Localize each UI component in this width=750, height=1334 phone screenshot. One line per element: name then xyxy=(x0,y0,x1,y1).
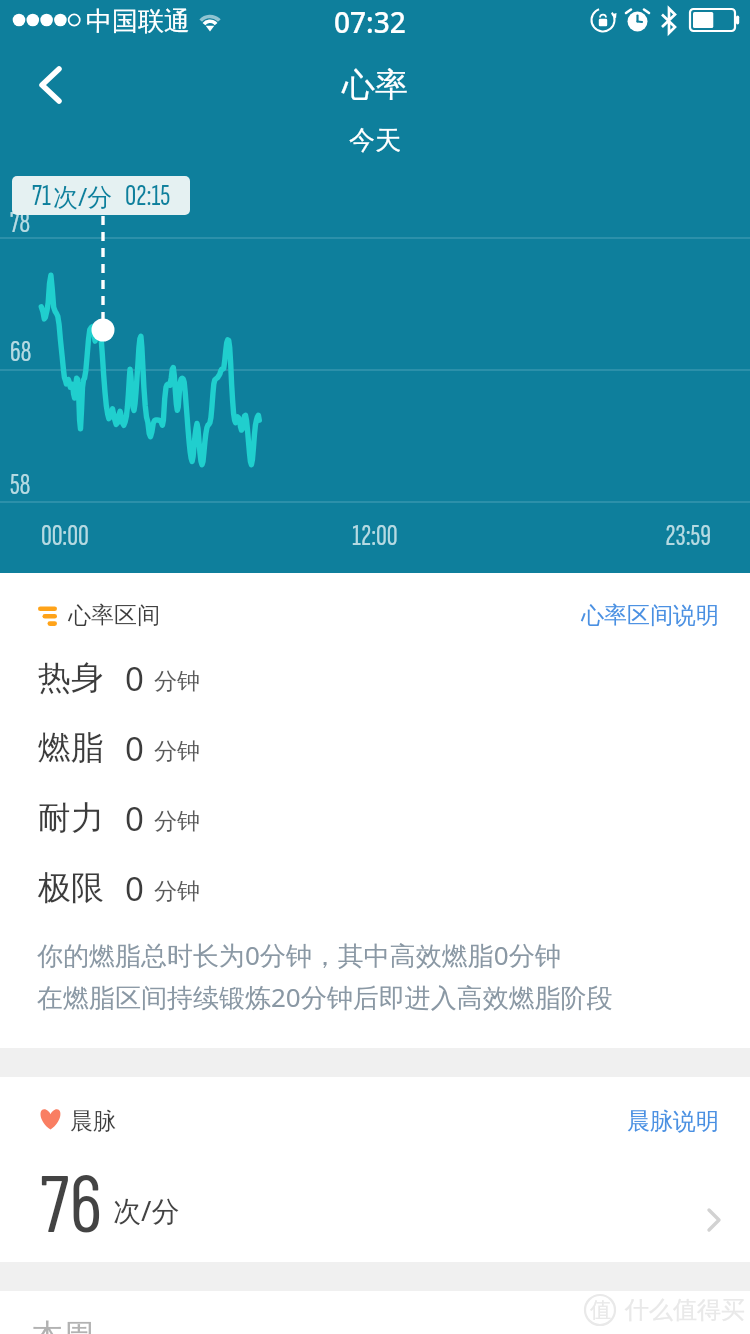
staticText: 次/分 xyxy=(53,179,113,213)
staticText: 07:32 xyxy=(334,3,406,41)
staticText: 分钟 xyxy=(154,877,200,906)
staticText: 你的燃脂总时长为0分钟，其中高效燃脂0分钟 xyxy=(37,937,561,973)
button[interactable]: 耐力 xyxy=(0,788,750,848)
staticText: 燃脂 xyxy=(38,727,104,769)
button[interactable]: 燃脂 xyxy=(0,718,750,778)
staticText: 晨脉说明 xyxy=(627,1107,719,1135)
staticText: 分钟 xyxy=(154,807,200,836)
button[interactable]: 心率区间说明 xyxy=(577,595,723,636)
button[interactable]: 极限 xyxy=(0,858,750,918)
button[interactable]: 晨脉说明 xyxy=(623,1101,723,1141)
button[interactable]: 热身 xyxy=(0,648,750,708)
staticText: 68 xyxy=(10,334,32,370)
staticText: 0 xyxy=(125,866,144,911)
button[interactable]: 晨脉 xyxy=(0,1077,750,1262)
staticText: 心率 xyxy=(0,64,750,106)
staticText: 00:00 xyxy=(41,518,89,554)
staticText: 次/分 xyxy=(113,1191,180,1229)
button[interactable]: Back xyxy=(20,55,80,115)
staticText: 什么值得买 xyxy=(625,1295,745,1325)
staticText: 值 xyxy=(590,1297,611,1323)
staticText: 耐力 xyxy=(38,797,104,839)
staticText: 71 xyxy=(32,177,51,214)
staticText: 0 xyxy=(125,796,144,841)
staticText: 晨脉 xyxy=(70,1107,116,1136)
staticText: 本周 xyxy=(32,1316,94,1334)
staticText: 心率区间说明 xyxy=(581,601,719,630)
staticText: 分钟 xyxy=(154,737,200,766)
staticText: 在燃脂区间持续锻炼20分钟后即进入高效燃脂阶段 xyxy=(37,979,613,1015)
staticText: 76 xyxy=(40,1152,103,1248)
staticText: 分钟 xyxy=(154,667,200,696)
staticText: 热身 xyxy=(38,657,104,699)
staticText: 78 xyxy=(10,205,31,241)
staticText: 今天 xyxy=(0,124,750,157)
staticText: 58 xyxy=(10,467,31,503)
other: More xyxy=(691,1195,737,1245)
staticText: 0 xyxy=(125,656,144,701)
staticText: 12:00 xyxy=(0,518,750,554)
staticText: 中国联通 xyxy=(86,5,190,38)
staticText: 心率区间 xyxy=(68,601,160,630)
staticText: 02:15 xyxy=(125,177,171,214)
staticText: 23:59 xyxy=(0,518,711,554)
staticText: 极限 xyxy=(38,867,104,909)
staticText: 0 xyxy=(125,726,144,771)
